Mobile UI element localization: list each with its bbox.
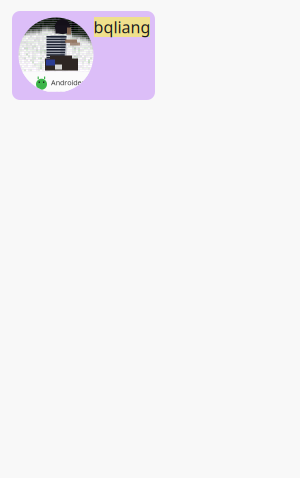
staticText: bqliang bbox=[93, 16, 150, 38]
button[interactable]: Androider bbox=[12, 11, 155, 100]
staticText: Androider bbox=[51, 78, 107, 94]
